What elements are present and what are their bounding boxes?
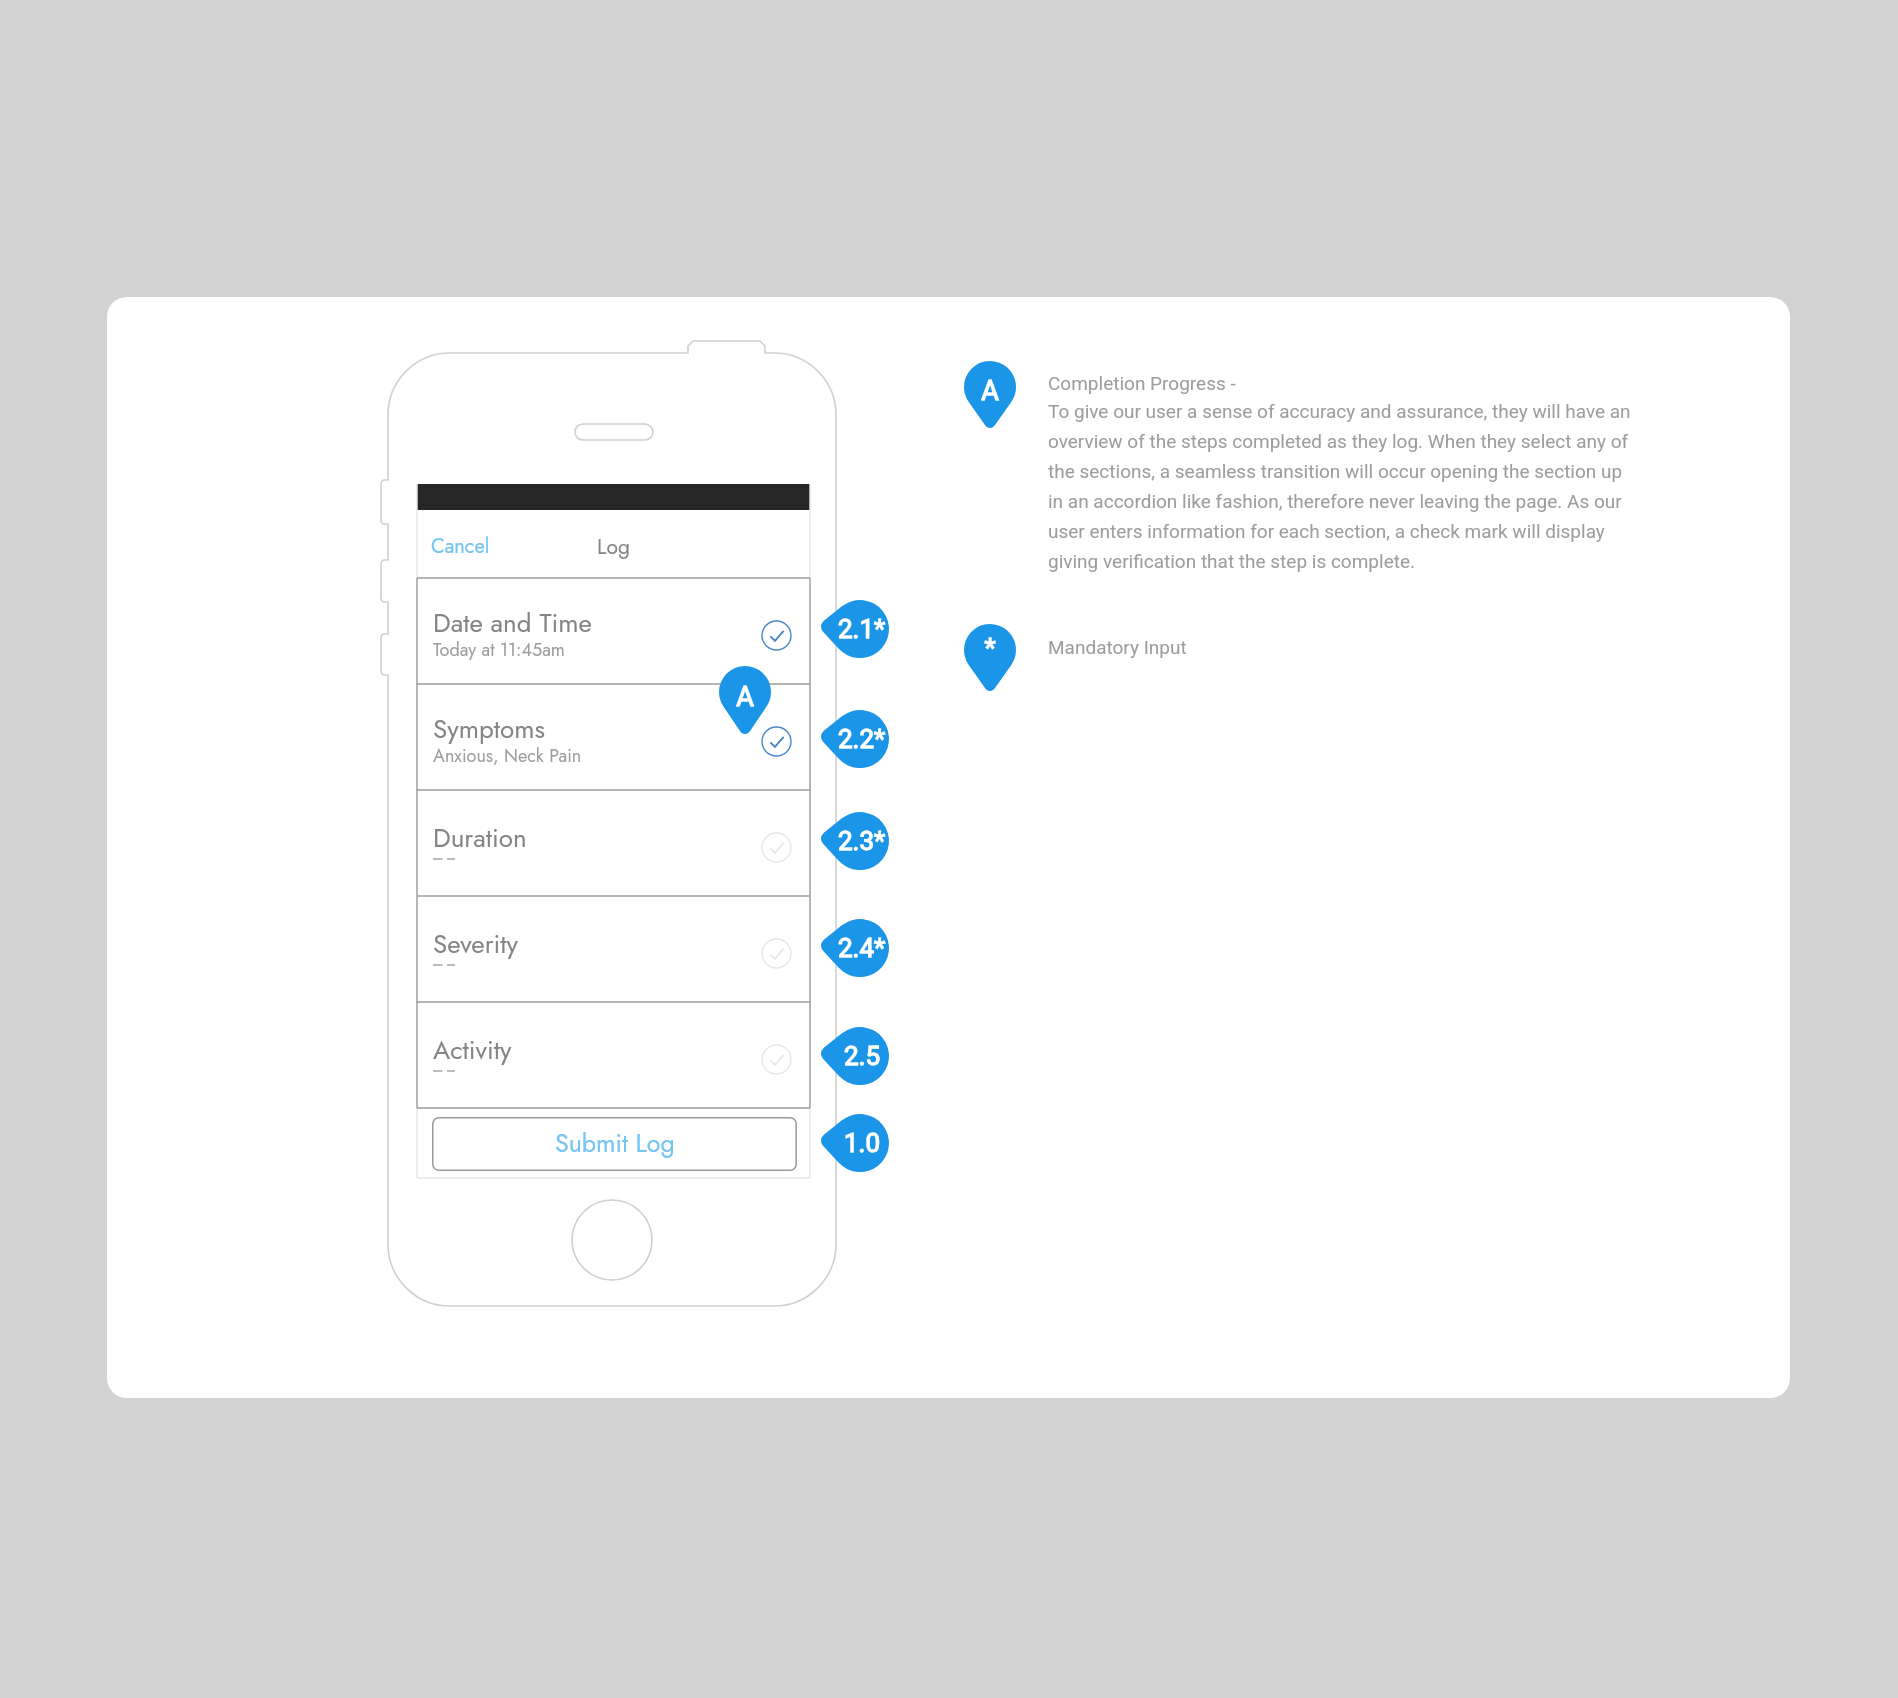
staticText: To give our user a sense of accuracy and…: [1048, 400, 1638, 572]
staticText: Completion Progress -: [1048, 372, 1236, 394]
staticText: Symptoms: [433, 710, 545, 748]
staticText: 2.1*: [838, 614, 886, 644]
staticText: Mandatory Input: [1048, 636, 1187, 658]
button[interactable]: Symptoms: [417, 684, 810, 790]
staticText: A: [981, 375, 999, 407]
staticText: Date and Time: [433, 604, 592, 642]
staticText: A: [736, 681, 754, 713]
staticText: 2.4*: [838, 933, 886, 963]
button[interactable]: Activity: [417, 1002, 810, 1108]
button[interactable]: Date and Time: [417, 578, 810, 684]
button[interactable]: Not completed: [759, 936, 793, 970]
button[interactable]: Cancel: [417, 526, 498, 567]
staticText: Cancel: [431, 532, 490, 561]
staticText: 2.5: [844, 1041, 881, 1071]
button[interactable]: Completed: [759, 724, 793, 758]
staticText: Severity: [433, 925, 519, 963]
staticText: Activity: [433, 1031, 512, 1069]
button[interactable]: Submit Log: [432, 1117, 797, 1171]
staticText: Duration: [433, 819, 527, 857]
button[interactable]: Not completed: [759, 830, 793, 864]
staticText: Submit Log: [555, 1125, 675, 1161]
staticText: Today at 11:45am: [433, 637, 565, 663]
staticText: 2.3*: [838, 826, 886, 856]
staticText: 2.2*: [838, 724, 886, 754]
staticText: Anxious, Neck Pain: [433, 743, 582, 769]
button[interactable]: Duration: [417, 790, 810, 896]
button[interactable]: Severity: [417, 896, 810, 1002]
staticText: 1.0: [844, 1128, 881, 1158]
staticText: *: [984, 633, 996, 663]
button[interactable]: Completed: [759, 618, 793, 652]
button[interactable]: Not completed: [759, 1042, 793, 1076]
staticText: Log: [597, 532, 630, 562]
